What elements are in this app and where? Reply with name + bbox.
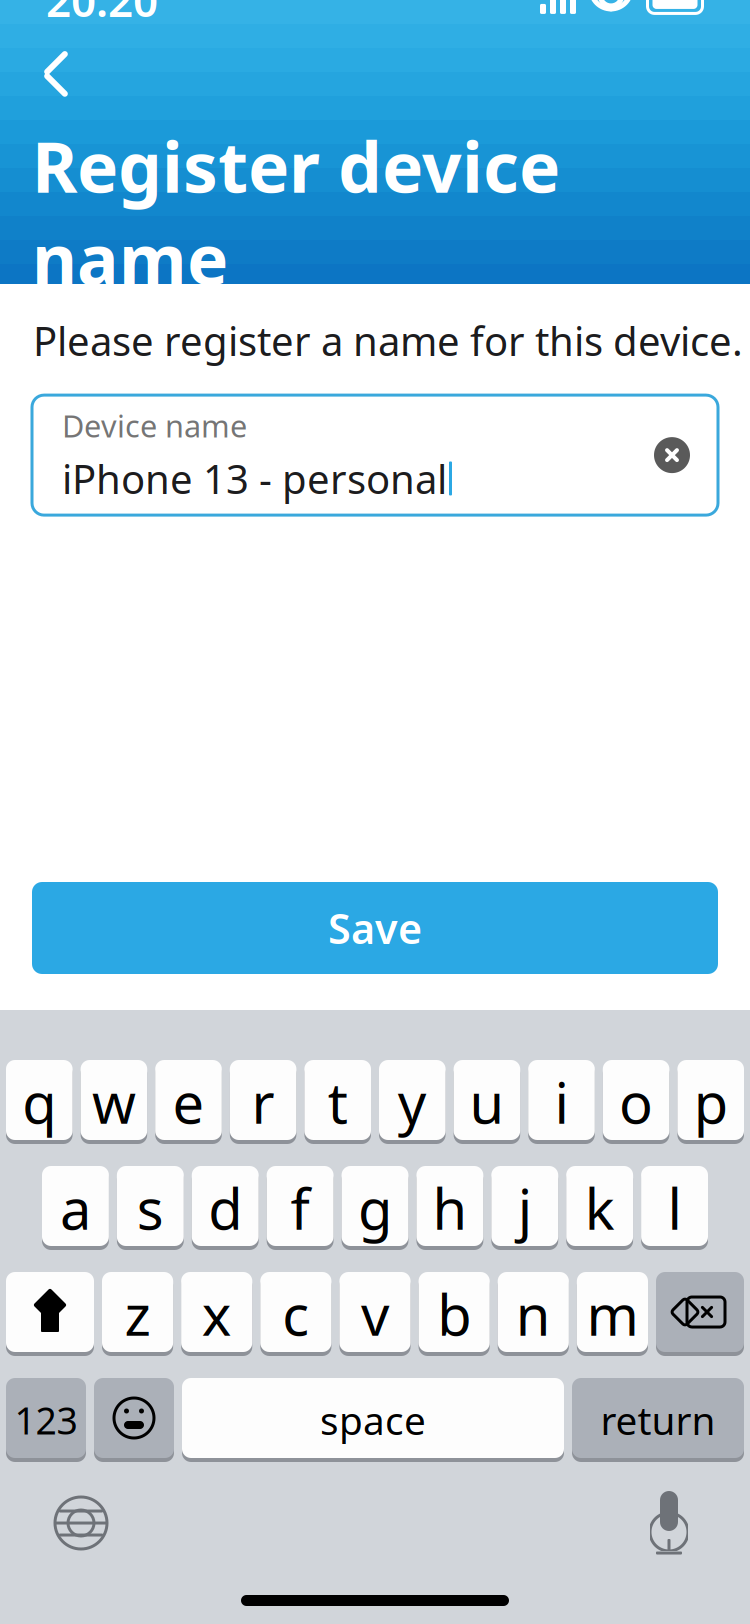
button[interactable]: 123: [6, 1378, 86, 1462]
button[interactable]: v: [339, 1272, 410, 1356]
button[interactable]: a: [42, 1166, 109, 1250]
staticText: s: [137, 1171, 164, 1245]
button[interactable]: i: [528, 1060, 595, 1144]
staticText: j: [518, 1171, 532, 1245]
button[interactable]: q: [6, 1060, 73, 1144]
staticText: Device name: [62, 405, 247, 446]
button[interactable]: c: [260, 1272, 331, 1356]
staticText: a: [60, 1171, 91, 1245]
button[interactable]: g: [342, 1166, 408, 1250]
staticText: z: [125, 1277, 151, 1351]
staticText: g: [358, 1171, 392, 1245]
staticText: e: [172, 1065, 204, 1139]
button[interactable]: y: [379, 1060, 446, 1144]
button[interactable]: Emoji: [94, 1378, 174, 1462]
button[interactable]: r: [230, 1060, 296, 1144]
button[interactable]: t: [304, 1060, 371, 1144]
button[interactable]: s: [117, 1166, 184, 1250]
staticText: i: [554, 1065, 568, 1139]
button[interactable]: w: [81, 1060, 147, 1144]
staticText: m: [586, 1277, 638, 1351]
button[interactable]: n: [498, 1272, 569, 1356]
staticText: d: [208, 1171, 242, 1245]
staticText: r: [252, 1065, 275, 1139]
button[interactable]: Save: [32, 882, 718, 974]
button[interactable]: e: [155, 1060, 222, 1144]
button[interactable]: Clear text: [646, 429, 698, 481]
button[interactable]: l: [641, 1166, 708, 1250]
button[interactable]: Next keyboard: [36, 1478, 126, 1568]
button[interactable]: x: [181, 1272, 252, 1356]
staticText: Save: [328, 901, 422, 955]
staticText: n: [516, 1277, 551, 1351]
button[interactable]: o: [603, 1060, 669, 1144]
staticText: y: [398, 1065, 427, 1139]
button[interactable]: Dictate: [624, 1478, 714, 1568]
staticText: f: [291, 1171, 310, 1245]
staticText: v: [361, 1277, 389, 1351]
button[interactable]: h: [416, 1166, 483, 1250]
staticText: q: [22, 1065, 56, 1139]
staticText: Register device name: [32, 120, 560, 304]
button[interactable]: p: [677, 1060, 744, 1144]
staticText: l: [668, 1171, 682, 1245]
staticText: p: [694, 1065, 728, 1139]
button[interactable]: m: [577, 1272, 648, 1356]
staticText: t: [328, 1065, 348, 1139]
staticText: iPhone 13 - personal: [62, 452, 447, 505]
staticText: h: [432, 1171, 467, 1245]
button[interactable]: Shift: [6, 1272, 94, 1356]
staticText: x: [202, 1277, 232, 1351]
button[interactable]: d: [192, 1166, 259, 1250]
button[interactable]: Delete: [656, 1272, 744, 1356]
button[interactable]: space: [182, 1378, 564, 1462]
staticText: k: [585, 1171, 615, 1245]
button[interactable]: k: [566, 1166, 633, 1250]
button[interactable]: b: [419, 1272, 490, 1356]
button[interactable]: z: [102, 1272, 173, 1356]
staticText: o: [619, 1065, 653, 1139]
staticText: 20:20: [46, 0, 158, 29]
staticText: space: [320, 1394, 426, 1446]
staticText: b: [437, 1277, 471, 1351]
staticText: Please register a name for this device.: [33, 314, 743, 367]
button[interactable]: return: [572, 1378, 744, 1462]
button[interactable]: j: [491, 1166, 558, 1250]
staticText: w: [92, 1065, 136, 1139]
staticText: c: [282, 1277, 309, 1351]
button[interactable]: Back: [18, 36, 94, 112]
staticText: u: [469, 1065, 504, 1139]
staticText: return: [600, 1394, 715, 1446]
button[interactable]: f: [267, 1166, 334, 1250]
button[interactable]: u: [454, 1060, 520, 1144]
staticText: 123: [14, 1395, 77, 1445]
